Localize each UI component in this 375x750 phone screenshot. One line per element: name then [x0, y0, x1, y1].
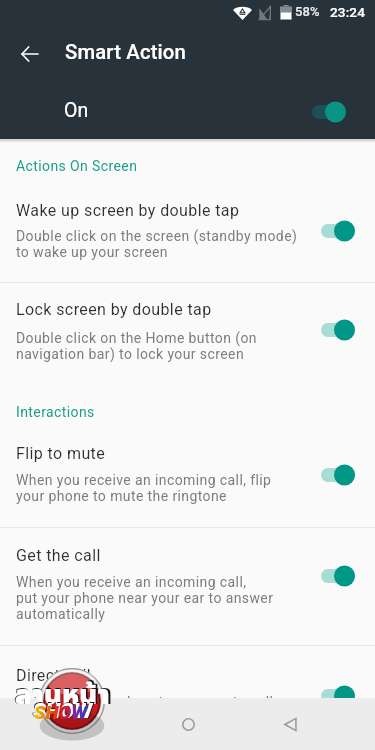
button[interactable]: Home [170, 706, 206, 742]
staticText: Wake up screen by double tap [16, 201, 240, 220]
staticText: ลานหน้า [15, 675, 110, 716]
staticText: 58% [295, 4, 320, 19]
staticText: ลานหน้า [14, 674, 113, 716]
staticText: SHOW [33, 699, 92, 724]
staticText: Get the call [16, 546, 101, 565]
staticText: Smart Action [65, 40, 186, 64]
button[interactable]: Wake up screen by double tap [0, 183, 375, 282]
staticText: Double click on the screen (standby mode… [16, 228, 298, 244]
staticText: Flip to mute [16, 444, 106, 463]
button[interactable]: Back [5, 30, 53, 78]
staticText: On [64, 99, 89, 122]
staticText: Direct call [16, 666, 91, 685]
staticText: SHOW [32, 698, 94, 724]
button: Actions On Screen [0, 151, 375, 183]
staticText: Put your phone close to your ear to call [16, 694, 274, 710]
staticText: When you receive an incoming call, [16, 574, 247, 590]
staticText: SHOW [34, 701, 88, 723]
staticText: 23:24 [330, 4, 365, 20]
button[interactable]: Direct call [0, 646, 375, 698]
staticText: Lock screen by double tap [16, 300, 212, 319]
staticText: When you receive an incoming call, flip [16, 472, 272, 488]
button[interactable]: On [0, 83, 375, 139]
staticText: navigation bar) to lock your screen [16, 346, 245, 362]
staticText: Double click on the Home button (on [16, 330, 257, 346]
staticText: automatically [16, 606, 106, 622]
button[interactable]: Flip to mute [0, 428, 375, 527]
staticText: put your phone near your ear to answer [16, 590, 274, 606]
button[interactable]: Back [272, 706, 308, 742]
staticText: Interactions [16, 404, 95, 420]
button[interactable]: Get the call [0, 528, 375, 645]
staticText: Actions On Screen [16, 158, 138, 174]
button: Interactions [0, 397, 375, 429]
staticText: to wake up your screen [16, 244, 168, 260]
button[interactable]: Lock screen by double tap [0, 283, 375, 382]
staticText: your phone to mute the ringtone [16, 488, 227, 504]
